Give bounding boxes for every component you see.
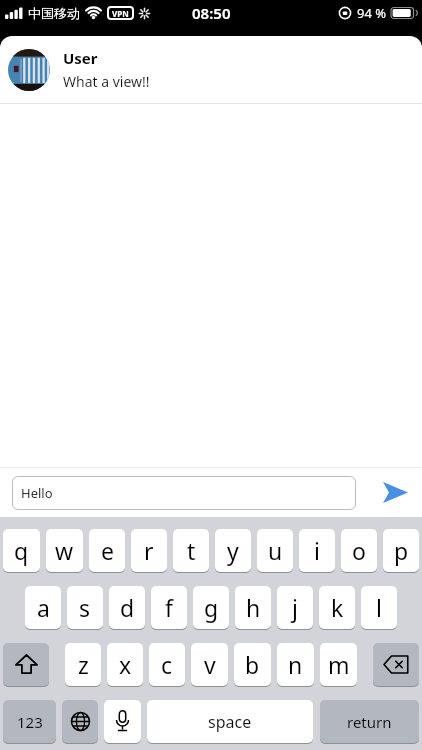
staticText: x xyxy=(119,649,132,680)
button[interactable] xyxy=(3,643,49,687)
staticText: space xyxy=(208,711,252,733)
staticText: j xyxy=(292,592,298,623)
button[interactable]: return xyxy=(320,700,419,744)
button[interactable]: z xyxy=(65,643,101,687)
staticText: g xyxy=(204,592,219,623)
staticText: b xyxy=(245,649,260,680)
staticText: q xyxy=(14,535,29,566)
staticText: 08:50 xyxy=(192,3,231,23)
staticText: t xyxy=(187,535,196,566)
staticText: 123 xyxy=(17,712,43,732)
staticText: 中国移动 xyxy=(28,5,80,21)
staticText: c xyxy=(161,649,173,680)
button[interactable]: 123 xyxy=(3,700,56,744)
button[interactable]: h xyxy=(235,586,271,630)
button[interactable]: v xyxy=(191,643,228,687)
staticText: d xyxy=(120,592,135,623)
button[interactable]: Hello xyxy=(12,476,356,510)
staticText: k xyxy=(331,592,344,623)
button[interactable]: User xyxy=(0,36,422,103)
staticText: z xyxy=(78,649,89,680)
staticText: f xyxy=(165,592,173,623)
button[interactable] xyxy=(104,700,141,744)
staticText: User xyxy=(63,48,98,68)
button[interactable]: r xyxy=(131,529,167,573)
staticText: a xyxy=(37,592,50,623)
staticText: o xyxy=(352,535,366,566)
button[interactable]: l xyxy=(361,586,397,630)
button[interactable]: j xyxy=(277,586,313,630)
staticText: What a view!! xyxy=(63,72,150,91)
staticText: e xyxy=(101,535,114,566)
staticText: w xyxy=(55,535,74,566)
staticText: h xyxy=(246,592,261,623)
button[interactable]: y xyxy=(215,529,251,573)
button[interactable] xyxy=(373,643,419,687)
staticText: return xyxy=(347,712,392,732)
staticText: 94 % xyxy=(357,4,387,22)
button[interactable]: e xyxy=(89,529,125,573)
staticText: VPN xyxy=(112,8,129,19)
button[interactable] xyxy=(62,700,98,744)
button[interactable]: g xyxy=(193,586,229,630)
button[interactable]: x xyxy=(107,643,143,687)
button[interactable]: w xyxy=(46,529,83,573)
button[interactable]: a xyxy=(25,586,61,630)
button[interactable]: q xyxy=(3,529,40,573)
staticText: Hello xyxy=(21,484,53,502)
staticText: s xyxy=(79,592,91,623)
staticText: m xyxy=(328,649,350,680)
button[interactable]: t xyxy=(173,529,209,573)
staticText: n xyxy=(288,649,303,680)
button[interactable]: m xyxy=(320,643,357,687)
button[interactable]: s xyxy=(67,586,103,630)
staticText: u xyxy=(268,535,283,566)
staticText: v xyxy=(204,649,216,680)
button[interactable]: k xyxy=(319,586,355,630)
button[interactable]: i xyxy=(299,529,335,573)
button[interactable]: p xyxy=(383,529,419,573)
button[interactable]: u xyxy=(257,529,293,573)
button[interactable] xyxy=(8,49,50,91)
staticText: l xyxy=(376,592,382,623)
button[interactable]: d xyxy=(109,586,145,630)
staticText: i xyxy=(314,535,320,566)
button[interactable]: b xyxy=(234,643,271,687)
button[interactable] xyxy=(356,468,422,517)
button[interactable]: f xyxy=(151,586,187,630)
button[interactable]: c xyxy=(149,643,185,687)
staticText: y xyxy=(227,535,239,566)
staticText: p xyxy=(394,535,409,566)
staticText: r xyxy=(144,535,154,566)
button[interactable]: n xyxy=(277,643,314,687)
button[interactable]: space xyxy=(147,700,313,744)
button[interactable]: o xyxy=(341,529,377,573)
